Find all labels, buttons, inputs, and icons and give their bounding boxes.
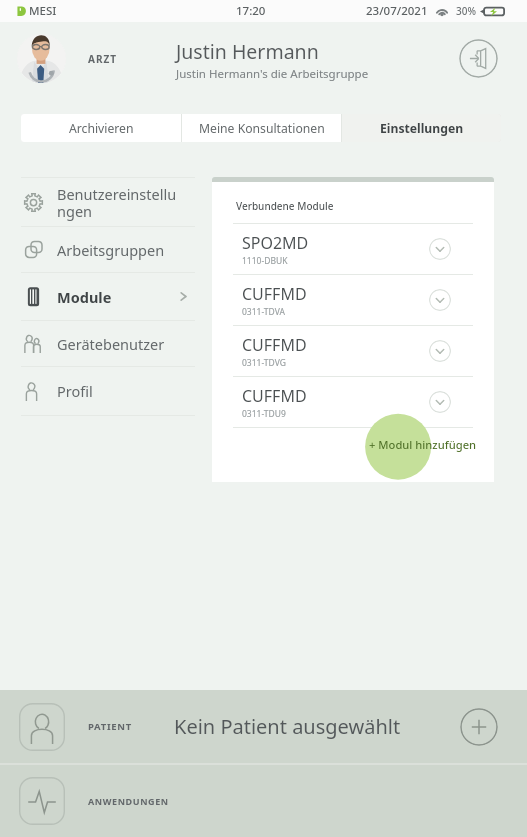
button[interactable]: CUFFMD: [242, 377, 451, 427]
staticText: 1110-DBUK: [242, 255, 288, 267]
staticText: Arbeitsgruppen: [57, 240, 165, 260]
button[interactable]: + Modul hinzufügen: [233, 428, 473, 460]
staticText: CUFFMD: [242, 385, 307, 407]
staticText: 0311-TDU9: [242, 408, 286, 420]
staticText: Einstellungen: [380, 120, 464, 137]
button[interactable]: Erweitern: [429, 289, 451, 311]
button[interactable]: Module: [21, 273, 195, 320]
staticText: CUFFMD: [242, 283, 307, 305]
staticText: ANWENDUNGEN: [88, 795, 169, 807]
button[interactable]: CUFFMD: [242, 326, 451, 376]
button[interactable]: Profil: [21, 367, 195, 415]
button[interactable]: Abmelden: [459, 39, 498, 78]
button[interactable]: Meine Konsultationen: [182, 114, 341, 142]
staticText: 17:20: [236, 3, 266, 19]
button[interactable]: ANWENDUNGEN: [19, 765, 509, 837]
staticText: PATIENT: [88, 720, 132, 733]
staticText: SPO2MD: [242, 232, 309, 254]
staticText: + Modul hinzufügen: [369, 437, 477, 452]
button[interactable]: CUFFMD: [242, 275, 451, 325]
staticText: 0311-TDVG: [242, 357, 286, 369]
button[interactable]: Erweitern: [429, 391, 451, 413]
staticText: 23/07/2021: [366, 3, 428, 19]
staticText: Justin Hermann: [176, 38, 319, 65]
staticText: Profil: [57, 381, 93, 401]
button[interactable]: Patient hinzufügen: [460, 708, 498, 746]
button[interactable]: Benutzereinstellu ngen: [21, 178, 195, 226]
staticText: Meine Konsultationen: [199, 120, 325, 137]
staticText: Archivieren: [69, 120, 134, 137]
staticText: Benutzereinstellu ngen: [57, 184, 177, 221]
staticText: Gerätebenutzer: [57, 334, 165, 354]
staticText: CUFFMD: [242, 334, 307, 356]
button[interactable]: Einstellungen: [342, 114, 501, 142]
staticText: 0311-TDVA: [242, 306, 285, 318]
staticText: ARZT: [88, 52, 118, 66]
button[interactable]: Gerätebenutzer: [21, 321, 195, 366]
staticText: Module: [57, 287, 112, 307]
staticText: Verbundene Module: [236, 199, 334, 213]
staticText: 30%: [456, 4, 476, 18]
button[interactable]: Erweitern: [429, 340, 451, 362]
button[interactable]: SPO2MD: [242, 224, 451, 274]
staticText: Justin Hermann's die Arbeitsgruppe: [176, 66, 369, 82]
staticText: MESI: [29, 3, 57, 19]
button[interactable]: Erweitern: [429, 238, 451, 260]
button[interactable]: Archivieren: [21, 114, 181, 142]
staticText: Kein Patient ausgewählt: [174, 713, 401, 740]
button[interactable]: Arbeitsgruppen: [21, 227, 195, 272]
button[interactable]: PATIENT: [19, 690, 498, 763]
